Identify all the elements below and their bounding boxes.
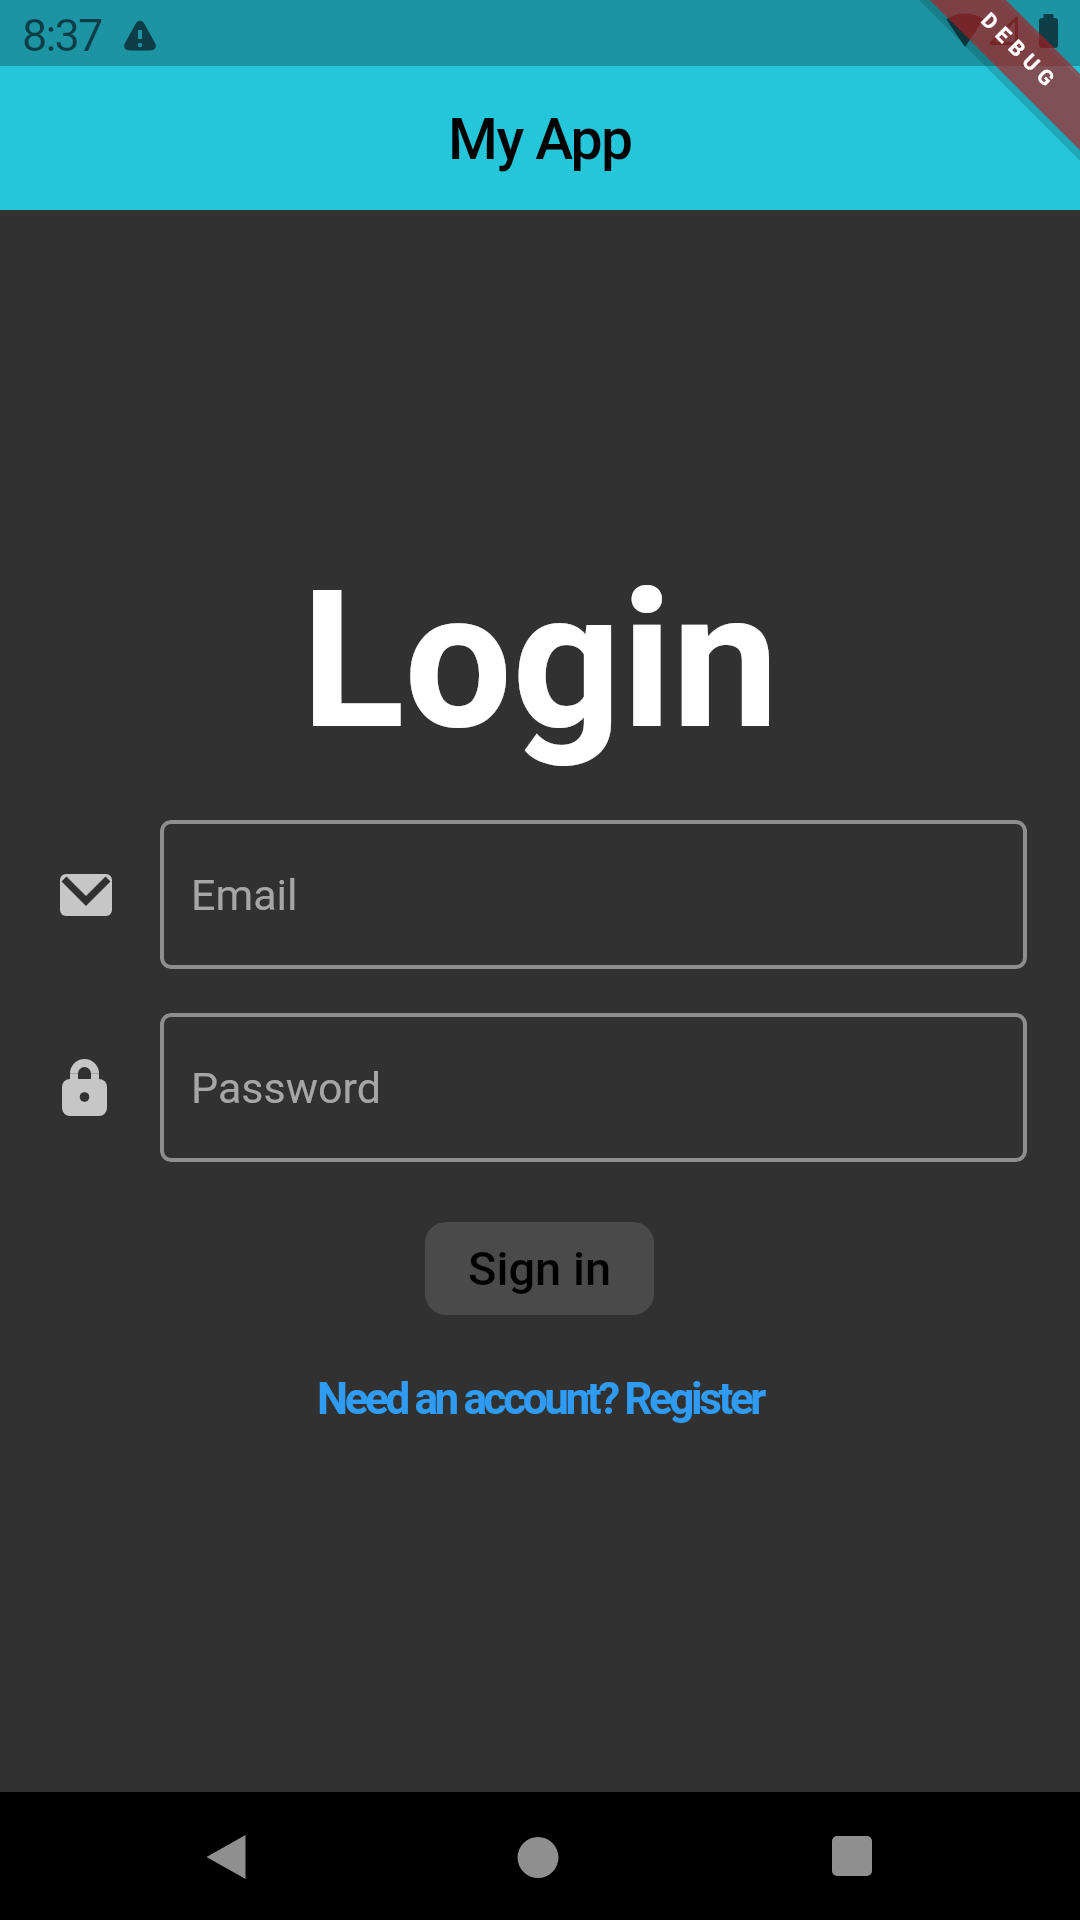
staticText: DEBUG xyxy=(975,8,1064,97)
button[interactable]: Need an account? Register xyxy=(0,1373,1080,1425)
button[interactable]: Email xyxy=(160,820,1027,969)
staticText: Sign in xyxy=(468,1241,612,1296)
button[interactable]: Sign in xyxy=(425,1222,654,1315)
button[interactable] xyxy=(488,1792,588,1920)
staticText: Login xyxy=(0,549,1080,773)
staticText: Password xyxy=(191,1063,381,1113)
button[interactable] xyxy=(176,1792,276,1920)
staticText: Email xyxy=(191,870,298,920)
button[interactable] xyxy=(802,1792,902,1920)
button[interactable]: Password xyxy=(160,1013,1027,1162)
staticText: 8:37 xyxy=(22,9,102,62)
staticText: My App xyxy=(448,106,632,173)
